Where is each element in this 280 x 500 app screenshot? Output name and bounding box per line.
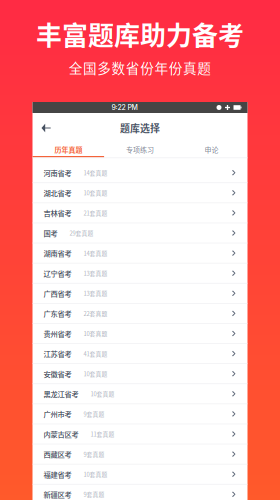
staticText: 广西省考 <box>43 288 71 299</box>
staticText: 21套真题 <box>83 209 107 217</box>
staticText: 全国多数省份年份真题 <box>69 58 211 77</box>
button[interactable]: 内蒙古区考 <box>32 424 247 444</box>
button[interactable]: 专项练习 <box>104 143 176 156</box>
staticText: 11套真题 <box>90 430 114 438</box>
staticText: 湖北省考 <box>43 187 71 198</box>
staticText: 题库选择 <box>120 121 160 135</box>
button[interactable]: 湖南省考 <box>32 243 247 263</box>
staticText: 10套真题 <box>83 189 107 197</box>
button[interactable]: 广西省考 <box>32 284 247 304</box>
staticText: 内蒙古区考 <box>43 429 78 439</box>
staticText: 黑龙江省考 <box>43 388 78 399</box>
staticText: 专项练习 <box>126 144 154 154</box>
button[interactable]: 江苏省考 <box>32 344 247 364</box>
button[interactable]: 辽宁省考 <box>32 263 247 284</box>
staticText: 10套真题 <box>83 329 107 338</box>
staticText: 历年真题 <box>54 144 82 154</box>
staticText: 江苏省考 <box>43 348 71 359</box>
button[interactable]: 福建省考 <box>32 464 247 485</box>
button[interactable]: Back <box>36 119 56 137</box>
staticText: 29套真题 <box>69 229 93 237</box>
button[interactable]: 历年真题 <box>33 143 104 156</box>
button[interactable]: 新疆区考 <box>32 485 247 500</box>
staticText: 丰富题库助力备考 <box>36 15 244 53</box>
staticText: 13套真题 <box>83 289 107 297</box>
button[interactable]: 河南省考 <box>32 163 247 183</box>
staticText: 13套真题 <box>83 269 107 277</box>
button[interactable]: 广州市考 <box>32 404 247 424</box>
staticText: 广州市考 <box>43 409 71 419</box>
staticText: 10套真题 <box>90 390 114 398</box>
button[interactable]: 湖北省考 <box>32 183 247 203</box>
staticText: 新疆区考 <box>43 489 71 500</box>
staticText: 安徽省考 <box>43 368 71 379</box>
staticText: 吉林省考 <box>43 208 71 218</box>
staticText: 10套真题 <box>83 470 107 478</box>
button[interactable]: 申论 <box>176 143 247 156</box>
staticText: 湖南省考 <box>43 248 71 258</box>
staticText: 申论 <box>205 144 219 154</box>
button[interactable]: 安徽省考 <box>32 364 247 384</box>
staticText: 河南省考 <box>43 167 71 178</box>
staticText: 辽宁省考 <box>43 268 71 278</box>
button[interactable]: 西藏区考 <box>32 444 247 464</box>
staticText: 9套真题 <box>83 410 104 418</box>
staticText: 10套真题 <box>83 369 107 378</box>
button[interactable]: 吉林省考 <box>32 203 247 223</box>
staticText: 福建省考 <box>43 469 71 479</box>
staticText: 22套真题 <box>83 309 107 318</box>
staticText: 14套真题 <box>83 249 107 257</box>
staticText: 9:22 PM <box>111 103 137 112</box>
staticText: 西藏区考 <box>43 449 71 459</box>
staticText: 41套真题 <box>83 349 107 358</box>
staticText: 14套真题 <box>83 168 107 177</box>
button[interactable]: 贵州省考 <box>32 324 247 344</box>
staticText: 贵州省考 <box>43 328 71 339</box>
button[interactable]: 广东省考 <box>32 304 247 324</box>
staticText: 广东省考 <box>43 308 71 319</box>
staticText: 9套真题 <box>83 490 104 498</box>
button[interactable]: 黑龙江省考 <box>32 384 247 404</box>
staticText: 9套真题 <box>83 450 104 458</box>
button[interactable]: 国考 <box>32 223 247 243</box>
staticText: 国考 <box>43 228 57 238</box>
